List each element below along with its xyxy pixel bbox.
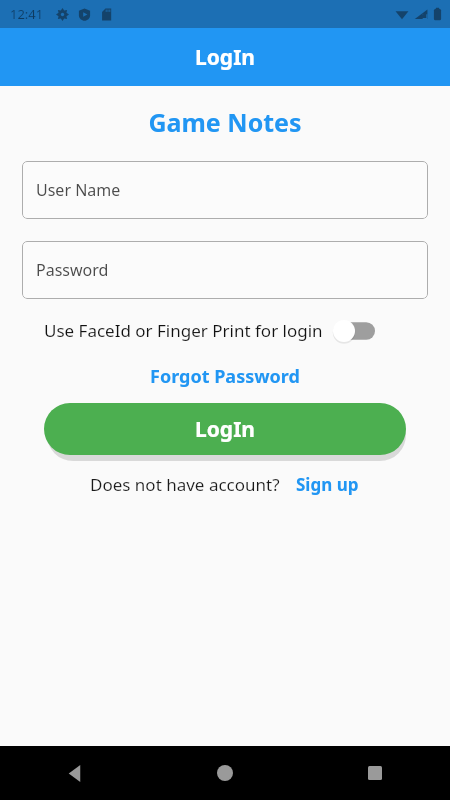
staticText: 12:41 — [10, 5, 44, 23]
button[interactable]: User Name — [22, 161, 428, 219]
staticText: Does not have account? — [90, 473, 280, 496]
staticText: User Name — [36, 179, 121, 201]
button[interactable]: Back — [0, 746, 150, 800]
button[interactable]: Password — [22, 241, 428, 299]
button[interactable]: Use FaceId or Finger Print for login tog… — [333, 320, 375, 342]
button[interactable]: Forgot Password — [0, 362, 450, 391]
button[interactable]: Use FaceId or Finger Print for login — [0, 313, 450, 348]
staticText: Password — [36, 259, 109, 281]
button[interactable]: Home — [150, 746, 300, 800]
staticText: LogIn — [195, 43, 255, 72]
staticText: Use FaceId or Finger Print for login — [44, 319, 323, 342]
button[interactable]: Recent apps — [300, 746, 450, 800]
button[interactable]: LogIn — [44, 403, 406, 455]
button[interactable]: Sign up — [294, 471, 361, 498]
staticText: LogIn — [195, 415, 255, 444]
staticText: Sign up — [296, 473, 359, 496]
staticText: Game Notes — [0, 105, 450, 139]
